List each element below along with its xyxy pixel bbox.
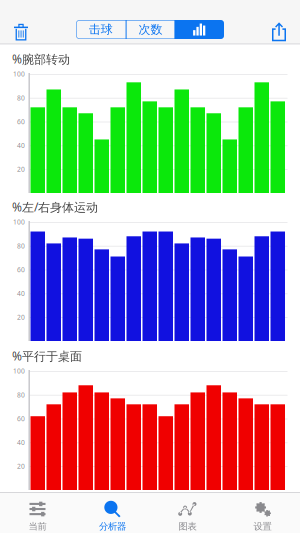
staticText: 设置 <box>253 521 271 532</box>
staticText: 40 <box>17 141 25 150</box>
staticText: 80 <box>17 241 25 250</box>
staticText: 图表 <box>178 521 196 532</box>
staticText: %平行于桌面 <box>12 348 82 364</box>
staticText: 80 <box>17 390 25 399</box>
button[interactable]: 击球 <box>76 20 126 39</box>
button[interactable]: Delete <box>14 20 50 44</box>
staticText: %腕部转动 <box>12 51 70 67</box>
button[interactable]: 次数 <box>127 20 174 39</box>
button[interactable]: 图表 <box>150 496 225 532</box>
staticText: 分析器 <box>99 521 126 532</box>
button[interactable]: Share <box>256 19 286 43</box>
button[interactable]: 当前 <box>0 496 75 532</box>
button[interactable]: 分析器 <box>75 496 150 532</box>
staticText: %左/右身体运动 <box>12 199 98 215</box>
staticText: 60 <box>17 265 25 274</box>
staticText: 80 <box>17 93 25 102</box>
staticText: 40 <box>17 438 25 447</box>
staticText: 40 <box>17 289 25 298</box>
staticText: 20 <box>17 462 25 471</box>
button[interactable]: 设置 <box>225 496 300 532</box>
staticText: 20 <box>17 313 25 322</box>
button[interactable]: Charts <box>174 20 224 39</box>
staticText: 100 <box>13 218 25 226</box>
staticText: 次数 <box>138 22 162 37</box>
staticText: 60 <box>17 117 25 126</box>
staticText: 100 <box>13 367 25 375</box>
staticText: 当前 <box>28 521 46 532</box>
staticText: 100 <box>13 70 25 78</box>
staticText: 击球 <box>89 22 113 37</box>
staticText: 20 <box>17 165 25 174</box>
staticText: 60 <box>17 414 25 423</box>
